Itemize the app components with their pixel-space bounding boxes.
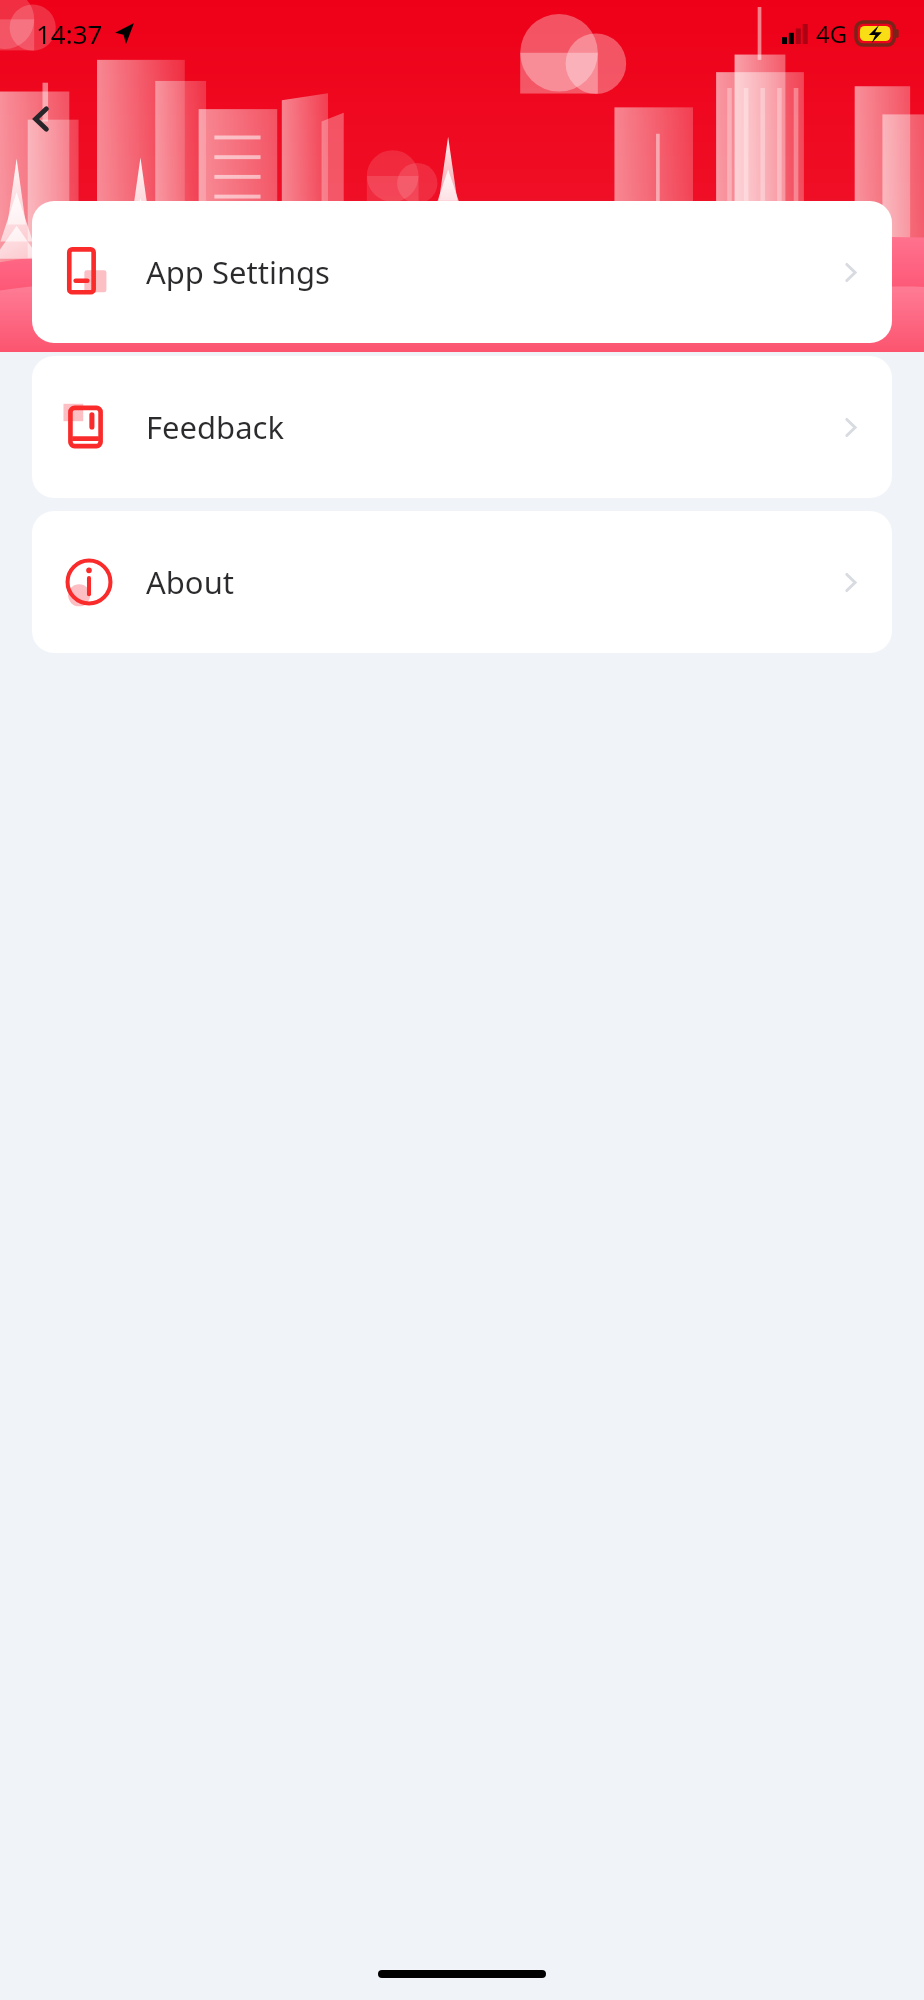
staticText: 14:37 — [36, 16, 103, 51]
button[interactable]: About — [32, 511, 892, 653]
button[interactable]: Feedback — [32, 356, 892, 498]
button[interactable]: Back — [12, 90, 70, 148]
staticText: About — [146, 561, 234, 603]
staticText: Feedback — [146, 406, 285, 448]
staticText: App Settings — [146, 251, 330, 293]
staticText: 4G — [816, 17, 848, 50]
button[interactable]: App Settings — [32, 201, 892, 343]
